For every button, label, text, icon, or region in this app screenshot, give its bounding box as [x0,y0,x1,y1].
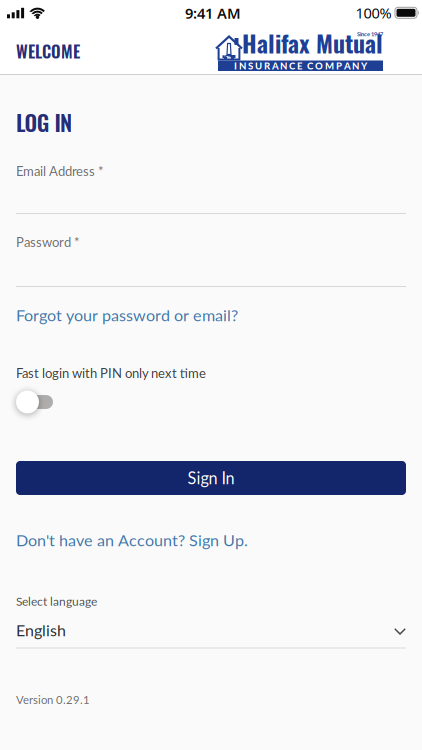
staticText: Fast login with PIN only next time [16,365,206,381]
staticText: 9:41 AM [185,3,241,23]
staticText: Don't have an Account? Sign Up. [16,530,248,550]
staticText: Select language [16,594,97,608]
staticText: 100% [355,3,391,23]
staticText: Sign In [187,468,234,488]
staticText: LOG IN [16,106,72,138]
staticText: WELCOME [16,39,80,63]
staticText: Email Address * [16,163,104,179]
staticText: Version 0.29.1 [16,693,90,706]
staticText: I N S U R A N C E C O M P A N Y [234,60,367,71]
button[interactable] [16,389,53,415]
button[interactable]: English [16,620,406,648]
staticText: Password * [16,234,80,250]
button[interactable]: Forgot your password or email? [16,305,238,325]
staticText: Forgot your password or email? [16,305,238,325]
staticText: Halifax Mutual [242,25,383,60]
staticText: Since 1947 [357,31,383,37]
button[interactable]: Don't have an Account? Sign Up. [16,530,248,550]
staticText: English [16,620,66,640]
button[interactable]: Sign In [16,461,406,495]
